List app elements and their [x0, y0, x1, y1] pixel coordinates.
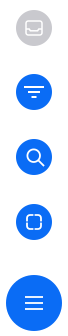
button[interactable]: Filter [16, 74, 52, 110]
button[interactable]: Inbox [16, 10, 52, 46]
button[interactable]: Menu [6, 275, 62, 331]
button[interactable]: Search [16, 139, 52, 175]
button[interactable]: Scan [16, 204, 52, 240]
